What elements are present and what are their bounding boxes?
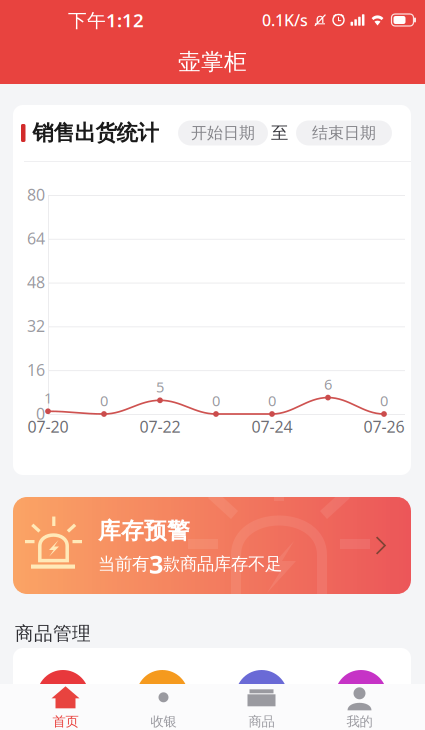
staticText: 我的 (346, 713, 372, 730)
button[interactable]: 我的 (310, 684, 408, 730)
staticText: 开始日期 (191, 123, 255, 143)
button[interactable]: 收银 (114, 684, 212, 730)
staticText: 销售出货统计 (32, 120, 158, 146)
staticText: 07-24 (251, 416, 292, 437)
staticText: 1 (44, 388, 52, 407)
button[interactable] (236, 670, 288, 722)
staticText: 0 (380, 391, 388, 410)
staticText: 0 (268, 391, 276, 410)
button[interactable] (136, 670, 188, 722)
staticText: 结束日期 (312, 123, 376, 143)
staticText: 款商品库存不足 (163, 553, 282, 575)
button[interactable] (335, 670, 387, 722)
staticText: 收银 (150, 713, 176, 730)
button[interactable]: 结束日期 (296, 120, 392, 145)
staticText: 3 (149, 547, 163, 581)
staticText: 07-22 (139, 416, 180, 437)
staticText: 07-26 (363, 416, 404, 437)
staticText: 下午1:12 (68, 8, 144, 32)
button[interactable]: 商品 (212, 684, 310, 730)
staticText: 6 (324, 374, 332, 394)
staticText: 16 (27, 359, 45, 380)
staticText: 0 (100, 391, 108, 410)
staticText: 32 (27, 315, 45, 336)
staticText: 当前有 (98, 553, 149, 575)
staticText: 库存预警 (98, 517, 190, 545)
button[interactable] (37, 670, 89, 722)
staticText: 商品管理 (15, 622, 91, 645)
button[interactable]: 库存预警 (13, 497, 411, 594)
staticText: 80 (27, 184, 45, 205)
staticText: 64 (27, 228, 45, 249)
staticText: 5 (156, 377, 164, 397)
staticText: 壶掌柜 (178, 48, 247, 76)
button[interactable]: 开始日期 (174, 120, 264, 145)
staticText: 48 (27, 271, 45, 293)
staticText: 0.1K/s (262, 9, 308, 31)
button[interactable]: 首页 (16, 684, 114, 730)
staticText: 0 (212, 391, 220, 410)
staticText: 07-20 (27, 416, 68, 437)
staticText: 至 (271, 122, 288, 144)
staticText: 商品 (248, 713, 274, 730)
staticText: 0 (36, 403, 45, 424)
staticText: 首页 (52, 713, 78, 730)
